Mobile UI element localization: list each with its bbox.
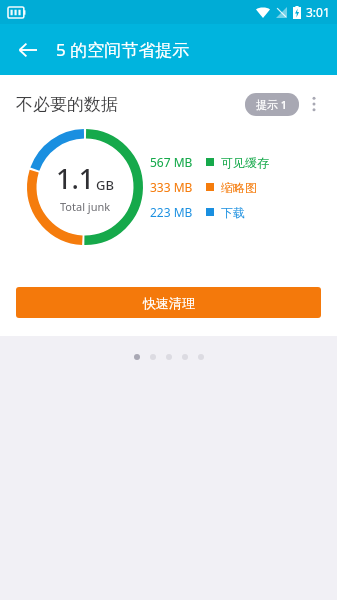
button[interactable]: 提示 1: [245, 93, 299, 116]
staticText: 3:01: [306, 4, 330, 20]
staticText: GB: [96, 176, 114, 194]
staticText: 不必要的数据: [16, 94, 118, 115]
staticText: 可见缓存: [221, 155, 269, 170]
staticText: 5 的空间节省提示: [56, 38, 190, 61]
staticText: Total junk: [60, 199, 111, 214]
staticText: 快速清理: [143, 295, 195, 311]
button[interactable]: More options: [299, 89, 329, 119]
staticText: 333 MB: [150, 179, 193, 195]
staticText: 567 MB: [150, 154, 193, 170]
staticText: 1.1: [56, 160, 95, 197]
staticText: 下载: [221, 205, 245, 220]
staticText: 缩略图: [221, 180, 257, 195]
button[interactable]: Back: [6, 28, 50, 72]
staticText: 223 MB: [150, 204, 193, 220]
staticText: 提示 1: [256, 97, 288, 112]
button[interactable]: 快速清理: [16, 287, 321, 318]
